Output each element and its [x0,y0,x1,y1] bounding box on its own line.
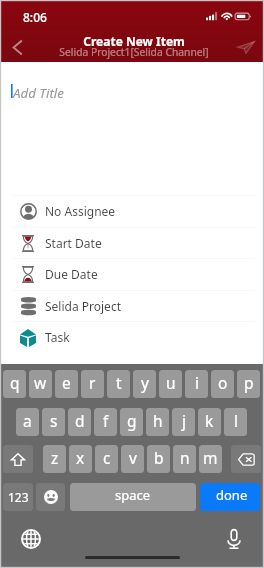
button[interactable]: g [120,408,143,436]
button[interactable]: v [121,445,144,473]
staticText: Start Date [45,235,102,251]
staticText: No Assignee [45,203,116,219]
button[interactable]: x [69,445,92,473]
staticText: done [216,486,248,504]
staticText: s [50,410,58,431]
button[interactable]: space [70,483,196,511]
staticText: i [195,372,199,393]
button[interactable]: Due Date [0,258,264,290]
button[interactable]: Task [0,321,264,353]
button[interactable]: l [224,408,247,436]
button[interactable]: Send [231,32,261,62]
button[interactable]: n [173,445,196,473]
button[interactable]: y [133,370,156,398]
staticText: Due Date [45,266,98,282]
button[interactable]: No Assignee [0,195,264,227]
button[interactable]: u [159,370,182,398]
staticText: space [115,486,151,504]
button[interactable]: q [3,370,26,398]
button[interactable]: done [200,483,260,511]
button[interactable]: f [94,408,117,436]
button[interactable]: Emoji [36,483,65,511]
staticText: o [218,372,228,393]
button[interactable]: Start Date [0,227,264,258]
button[interactable]: o [211,370,234,398]
staticText: y [141,372,149,393]
staticText: Add Title [13,84,64,102]
button[interactable]: r [81,370,104,398]
button[interactable]: 123 [3,483,33,511]
staticText: l [234,410,238,431]
button[interactable]: i [185,370,208,398]
staticText: g [127,410,137,431]
button[interactable]: Shift [3,445,33,473]
button[interactable]: w [29,370,52,398]
button[interactable]: a [16,408,39,436]
staticText: 8:06 [23,9,47,25]
button[interactable]: z [43,445,66,473]
staticText: r [89,372,96,393]
staticText: a [23,410,32,431]
staticText: x [76,447,85,468]
staticText: j [182,410,186,431]
staticText: Selida Project1[Selida Channel] [2,45,264,59]
button[interactable]: e [55,370,78,398]
button[interactable]: s [42,408,65,436]
staticText: c [103,447,111,468]
staticText: u [166,372,176,393]
button[interactable]: t [107,370,130,398]
staticText: f [103,410,109,431]
button[interactable]: d [68,408,91,436]
staticText: d [75,410,85,431]
button[interactable]: h [146,408,169,436]
staticText: e [62,372,71,393]
staticText: h [153,410,163,431]
staticText: z [51,447,59,468]
button[interactable]: Dictation [221,526,246,551]
staticText: t [116,372,122,393]
button[interactable]: Change keyboard [18,526,43,551]
staticText: w [34,372,47,393]
staticText: v [129,447,137,468]
staticText: Selida Project [45,298,121,314]
staticText: k [205,410,214,431]
staticText: 123 [8,489,29,505]
button[interactable]: Selida Project [0,290,264,321]
button[interactable]: k [198,408,221,436]
button[interactable]: Back [2,32,32,62]
staticText: q [10,372,20,393]
button[interactable]: p [237,370,260,398]
staticText: p [244,372,254,393]
staticText: n [180,447,190,468]
button[interactable]: c [95,445,118,473]
staticText: m [203,447,218,468]
button[interactable]: j [172,408,195,436]
button[interactable]: m [199,445,222,473]
staticText: b [154,447,164,468]
staticText: Create New Item [2,33,264,49]
button[interactable]: Backspace [231,445,261,473]
staticText: Task [45,329,70,345]
button[interactable]: b [147,445,170,473]
